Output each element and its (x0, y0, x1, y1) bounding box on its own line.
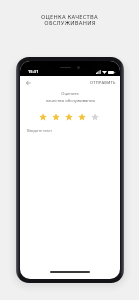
staticText: ОЦЕНКА КАЧЕСТВА (41, 13, 98, 21)
staticText: Оцените (61, 91, 79, 97)
button[interactable]: Rate 2 star (49, 111, 62, 122)
button[interactable]: Rate 1 star (36, 111, 49, 122)
button[interactable]: Rate 5 star (88, 111, 101, 122)
button[interactable]: Rate 3 star (62, 111, 75, 122)
staticText: качество обслуживания (46, 98, 95, 104)
button[interactable]: Rate 4 star (75, 111, 88, 122)
button[interactable]: ОТПРАВИТЬ (85, 77, 120, 88)
button[interactable]: Введите текст (20, 126, 120, 135)
staticText: Введите текст (27, 128, 52, 133)
staticText: ОТПРАВИТЬ (90, 80, 116, 85)
staticText: 15:31 (28, 69, 39, 75)
button[interactable]: Back (21, 76, 35, 90)
staticText: ОБСЛУЖИВАНИЯ (44, 19, 96, 27)
